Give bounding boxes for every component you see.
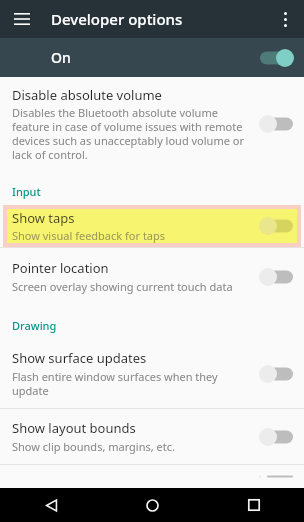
button[interactable]: Toggle switch, off	[258, 113, 294, 135]
staticText: Flash entire window surfaces when they u…	[12, 369, 250, 398]
button[interactable]: Toggle switch, off	[258, 475, 294, 478]
button[interactable]: On	[0, 38, 304, 77]
staticText: Pointer location	[12, 259, 109, 277]
button[interactable]: Show surface updates	[0, 339, 304, 408]
button[interactable]: Recent apps	[203, 488, 304, 522]
button[interactable]: More options	[269, 3, 301, 35]
staticText: Show surface updates	[12, 349, 147, 367]
button[interactable]: Show taps	[0, 205, 304, 247]
button[interactable]: Open navigation menu	[6, 3, 38, 35]
button[interactable]: Pointer location	[0, 248, 304, 305]
button[interactable]: Toggle switch, off	[258, 215, 294, 237]
staticText: On	[51, 48, 71, 67]
button[interactable]: Disable absolute volume	[0, 77, 304, 170]
button[interactable]: Back	[0, 488, 102, 522]
staticText: Developer options	[51, 9, 183, 29]
button[interactable]: Developer options, on	[259, 47, 295, 69]
staticText: Disable absolute volume	[12, 86, 162, 104]
button[interactable]: Toggle switch, off	[258, 363, 294, 385]
staticText: Screen overlay showing current touch dat…	[12, 279, 233, 294]
staticText: Show taps	[12, 209, 75, 227]
button[interactable]: Toggle switch, off	[258, 426, 294, 448]
button[interactable]: Force RTL layout direction	[0, 465, 304, 488]
staticText: Show visual feedback for taps	[12, 228, 166, 243]
staticText: Show clip bounds, margins, etc.	[12, 439, 175, 454]
button[interactable]: Show layout bounds	[0, 409, 304, 464]
button[interactable]: Toggle switch, off	[258, 266, 294, 288]
button[interactable]: Home	[102, 488, 203, 522]
staticText: Disables the Bluetooth absolute volume f…	[12, 105, 250, 162]
staticText: Input	[12, 184, 41, 199]
staticText: Show layout bounds	[12, 419, 136, 437]
staticText: Drawing	[12, 318, 57, 333]
